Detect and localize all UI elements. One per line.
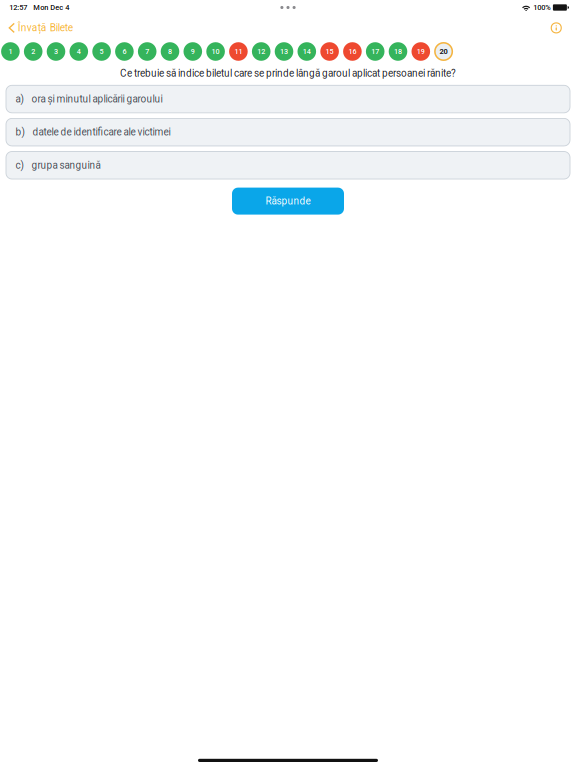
button[interactable]: b) [6, 118, 570, 146]
staticText: 20 [440, 47, 448, 56]
staticText: 13 [280, 47, 288, 56]
button[interactable]: Învață Bilete [0, 19, 73, 37]
button[interactable]: 14 [297, 42, 316, 61]
button[interactable]: Răspunde [232, 188, 344, 215]
staticText: 17 [371, 47, 379, 56]
staticText: 12:57 [9, 3, 27, 12]
button[interactable]: 12 [252, 42, 270, 61]
staticText: 19 [417, 47, 425, 56]
staticText: Învață Bilete [18, 22, 73, 34]
button[interactable]: 9 [183, 42, 202, 61]
staticText: 1 [8, 47, 12, 56]
staticText: 4 [77, 47, 81, 56]
staticText: 3 [54, 47, 58, 56]
staticText: 7 [145, 47, 149, 56]
staticText: 14 [303, 47, 311, 56]
button[interactable]: 16 [343, 42, 362, 61]
staticText: b) [16, 126, 25, 138]
button[interactable]: a) [6, 85, 570, 113]
button[interactable]: 15 [320, 42, 339, 61]
staticText: 11 [234, 47, 242, 56]
button[interactable]: 8 [161, 42, 179, 61]
staticText: 18 [394, 47, 402, 56]
staticText: Răspunde [265, 195, 310, 207]
staticText: ora și minutul aplicării garoului [32, 93, 163, 105]
staticText: Ce trebuie să indice biletul care se pri… [120, 67, 456, 79]
staticText: datele de identificare ale victimei [33, 126, 171, 138]
staticText: 2 [31, 47, 35, 56]
staticText: 16 [348, 47, 356, 56]
button[interactable]: 2 [24, 42, 42, 61]
button[interactable]: 1 [1, 42, 20, 61]
button[interactable]: 10 [206, 42, 225, 61]
button[interactable]: 11 [229, 42, 248, 61]
staticText: 100% [533, 3, 550, 12]
staticText: c) [16, 159, 24, 171]
button[interactable]: 17 [366, 42, 384, 61]
button[interactable]: 18 [389, 42, 407, 61]
staticText: 9 [191, 47, 195, 56]
button[interactable]: 5 [92, 42, 111, 61]
staticText: Mon Dec 4 [33, 3, 69, 12]
button[interactable]: 20 [434, 42, 453, 61]
staticText: 8 [168, 47, 172, 56]
staticText: a) [16, 93, 24, 105]
staticText: 15 [326, 47, 334, 56]
button[interactable]: 7 [138, 42, 156, 61]
button[interactable]: 3 [47, 42, 65, 61]
staticText: grupa sanguină [32, 159, 101, 171]
button[interactable]: 6 [115, 42, 134, 61]
staticText: 6 [122, 47, 126, 56]
staticText: 10 [212, 47, 220, 56]
button[interactable]: Information [550, 19, 576, 37]
button[interactable]: 13 [275, 42, 293, 61]
staticText: 12 [257, 47, 265, 56]
staticText: 5 [100, 47, 104, 56]
button[interactable]: 4 [69, 42, 88, 61]
button[interactable]: c) [6, 151, 570, 179]
button[interactable]: 19 [411, 42, 430, 61]
